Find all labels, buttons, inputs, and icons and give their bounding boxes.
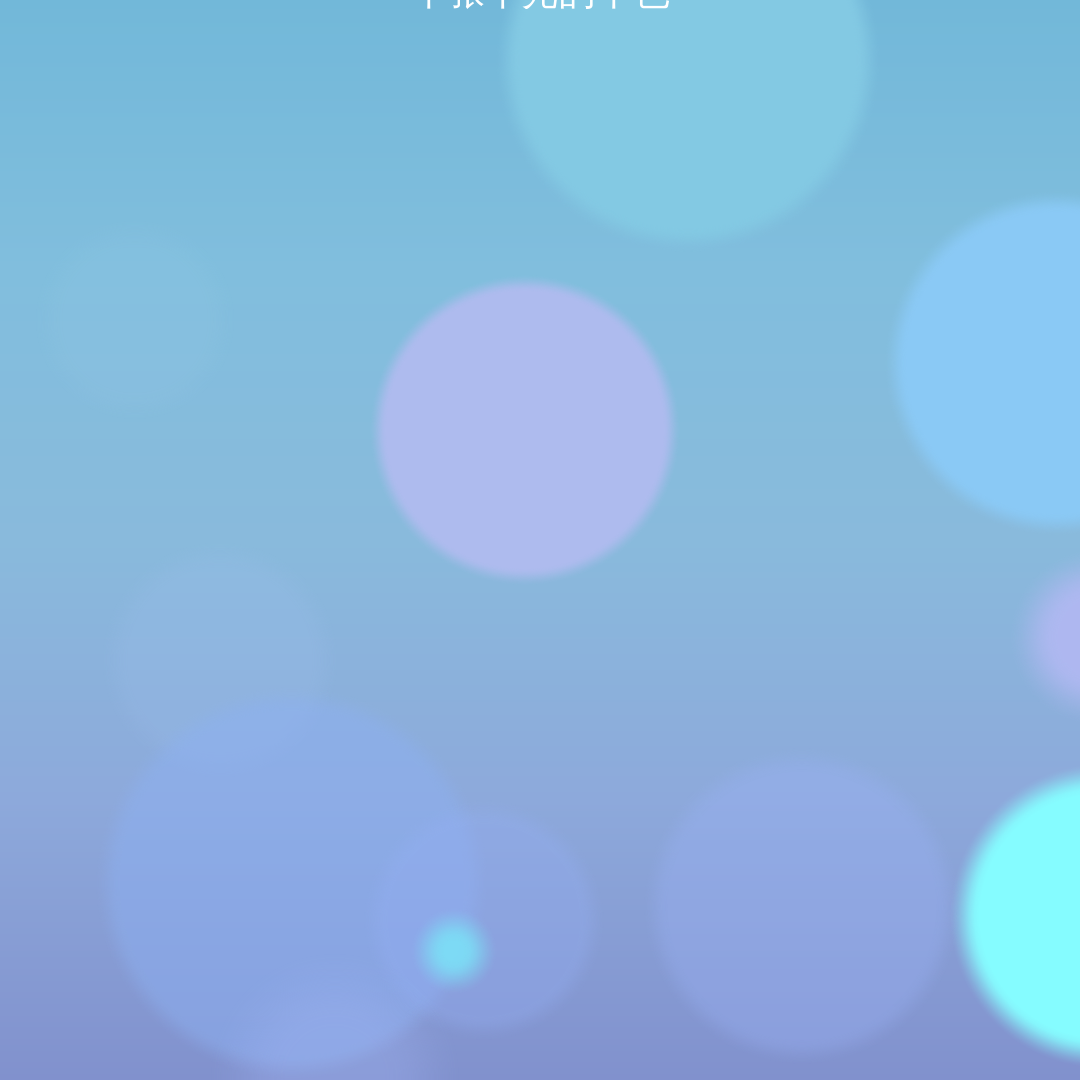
staticText: 千张半光的千色: [410, 0, 669, 15]
